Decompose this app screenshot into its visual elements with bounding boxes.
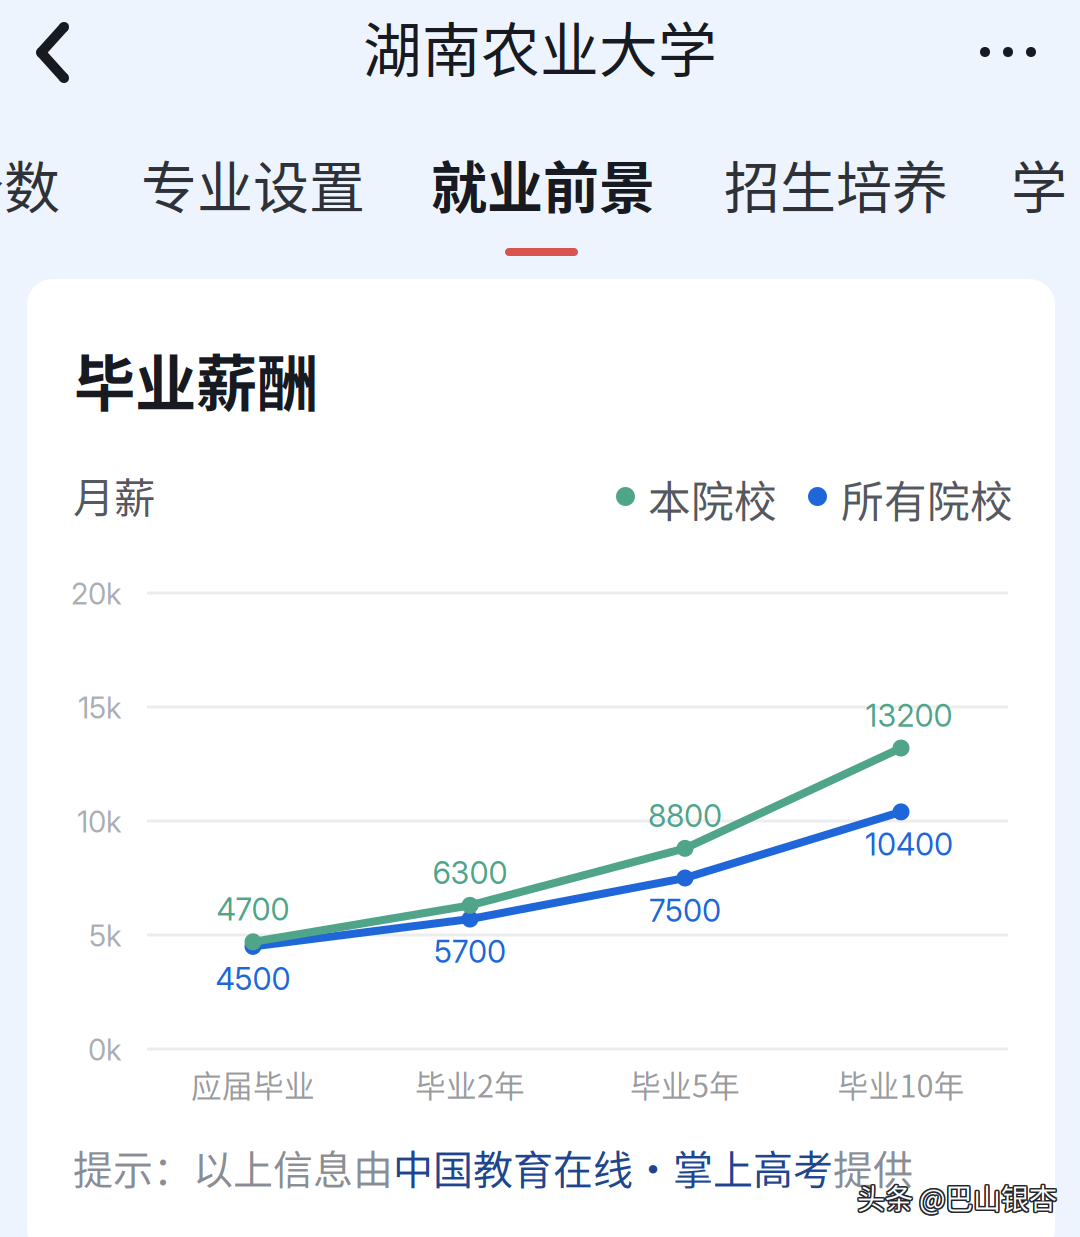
staticText: 10k xyxy=(77,804,122,839)
staticText: 湖南农业大学 xyxy=(363,4,717,89)
staticText: 专业设置 xyxy=(141,143,365,224)
button[interactable]: 专业设置 xyxy=(141,143,365,253)
staticText: 头条 @巴山银杏 xyxy=(858,1176,1058,1216)
staticText: 头条 @巴山银杏 xyxy=(857,1177,1057,1217)
button[interactable]: 学 xyxy=(1011,143,1070,253)
staticText: 15k xyxy=(78,690,122,725)
staticText: 头条 @巴山银杏 xyxy=(857,1179,1057,1219)
staticText: 中国教育在线·掌上高考 xyxy=(393,1138,833,1196)
button[interactable]: 就业前景 xyxy=(431,143,655,253)
staticText: 7500 xyxy=(649,892,721,929)
button[interactable]: 中国教育在线·掌上高考 xyxy=(393,1138,833,1196)
staticText: 招生培养 xyxy=(724,143,948,224)
staticText: 0k xyxy=(88,1032,122,1067)
staticText: 学 xyxy=(1011,143,1067,224)
staticText: 毕业5年 xyxy=(630,1062,740,1106)
staticText: 个数 xyxy=(0,143,60,224)
staticText: 毕业10年 xyxy=(837,1062,964,1106)
staticText: 10400 xyxy=(865,826,953,863)
staticText: 5k xyxy=(89,918,122,953)
staticText: 4700 xyxy=(216,891,289,928)
button[interactable]: More options xyxy=(965,0,1060,104)
staticText: 头条 @巴山银杏 xyxy=(856,1176,1056,1216)
staticText: 毕业2年 xyxy=(415,1062,525,1106)
staticText: 头条 @巴山银杏 xyxy=(859,1177,1059,1217)
staticText: 月薪 xyxy=(73,465,155,525)
staticText: 20k xyxy=(71,576,122,611)
staticText: 头条 @巴山银杏 xyxy=(858,1178,1058,1219)
staticText: 6300 xyxy=(432,854,507,891)
staticText: 8800 xyxy=(648,797,722,834)
staticText: 就业前景 xyxy=(431,143,655,224)
staticText: 头条 @巴山银杏 xyxy=(855,1177,1055,1217)
button[interactable]: Back xyxy=(0,0,110,104)
staticText: 13200 xyxy=(865,697,952,734)
button[interactable]: 招生培养 xyxy=(724,143,948,253)
staticText: 5700 xyxy=(434,933,506,970)
button[interactable]: 个数 xyxy=(0,143,62,253)
staticText: 4500 xyxy=(215,960,290,997)
staticText: 提供 xyxy=(833,1138,913,1196)
staticText: 头条 @巴山银杏 xyxy=(856,1178,1056,1219)
staticText: 毕业薪酬 xyxy=(74,335,318,424)
staticText: 本院校 xyxy=(648,468,777,530)
staticText: 提示：以上信息由 xyxy=(73,1138,393,1196)
staticText: 头条 @巴山银杏 xyxy=(857,1175,1057,1216)
staticText: 应届毕业 xyxy=(191,1062,315,1106)
staticText: 所有院校 xyxy=(841,468,1013,530)
